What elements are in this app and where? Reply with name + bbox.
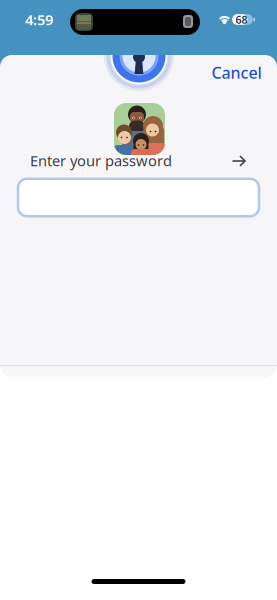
staticText: 4:59 xyxy=(25,10,53,29)
button[interactable]: Unlock xyxy=(231,154,247,168)
staticText: 68 xyxy=(235,12,247,27)
staticText: Cancel xyxy=(211,62,261,83)
button[interactable]: Cancel xyxy=(211,62,261,83)
button[interactable]: Password xyxy=(18,179,259,216)
staticText: Enter your password xyxy=(30,151,172,170)
